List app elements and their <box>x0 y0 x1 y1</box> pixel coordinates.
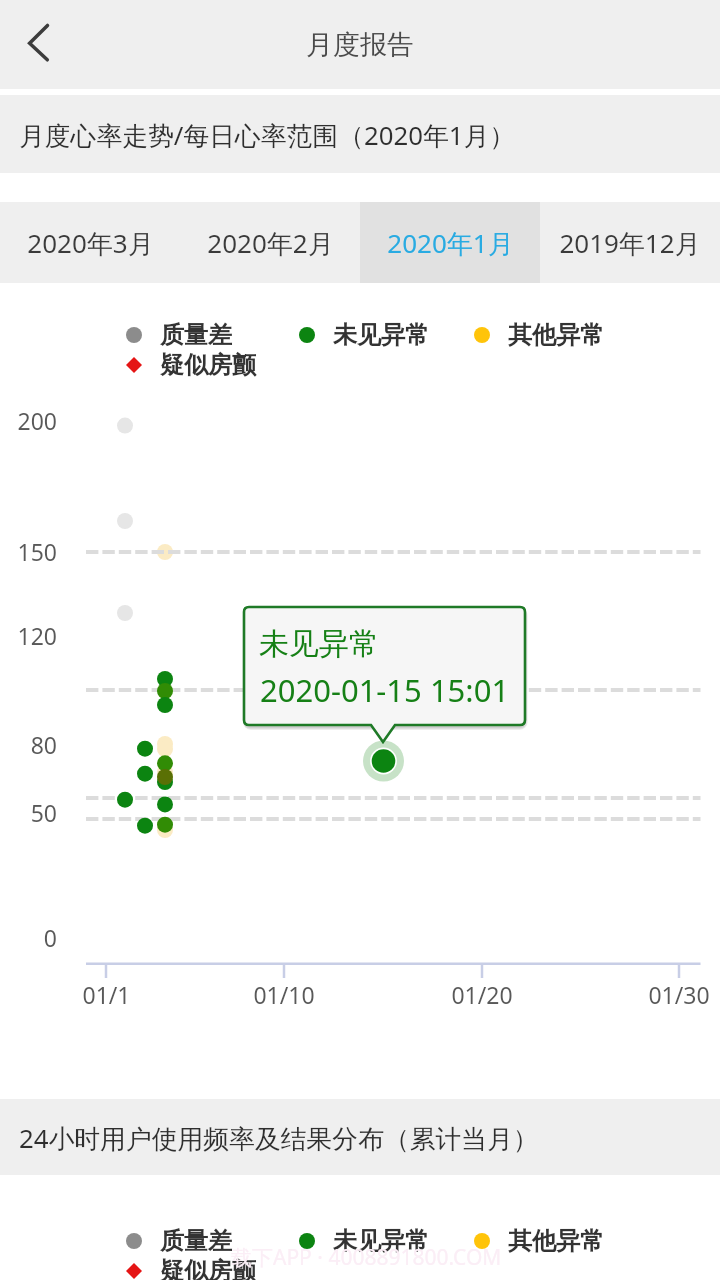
staticText: 200 <box>17 405 57 436</box>
staticText: 未见异常 <box>333 320 429 350</box>
button[interactable]: 2020年3月 <box>0 202 180 283</box>
button[interactable]: 2020年1月 <box>360 202 540 283</box>
staticText: 质量差 <box>160 320 232 350</box>
staticText: 月度报告 <box>306 28 414 62</box>
staticText: 150 <box>17 536 57 567</box>
staticText: 0 <box>43 922 57 953</box>
staticText: 疑似房颤 <box>160 1256 256 1280</box>
staticText: 其他异常 <box>508 320 604 350</box>
staticText: 2019年12月 <box>559 225 701 261</box>
staticText: 120 <box>17 620 57 651</box>
staticText: 质量差 <box>160 1226 232 1256</box>
staticText: 2020-01-15 15:01 <box>260 669 510 711</box>
staticText: 80 <box>30 729 57 760</box>
staticText: 2020年2月 <box>207 225 334 261</box>
staticText: 01/30 <box>648 979 710 1010</box>
button[interactable]: 未见异常 <box>244 607 525 725</box>
button[interactable]: 2019年12月 <box>540 202 720 283</box>
staticText: 月度心率走势/每日心率范围（2020年1月） <box>19 117 516 152</box>
staticText: 24小时用户使用频率及结果分布（累计当月） <box>19 1120 539 1155</box>
staticText: 2020年1月 <box>387 225 514 261</box>
staticText: 载下APP · 4008891800.COM <box>231 1243 502 1272</box>
staticText: 01/10 <box>253 979 315 1010</box>
staticText: 未见异常 <box>259 625 379 663</box>
button[interactable]: Back <box>0 0 78 89</box>
staticText: 01/1 <box>82 979 131 1010</box>
staticText: 2020年3月 <box>27 225 154 261</box>
staticText: 01/20 <box>451 979 513 1010</box>
button[interactable]: 2020年2月 <box>180 202 360 283</box>
staticText: 50 <box>30 797 57 828</box>
staticText: 未见异常 <box>333 1226 429 1256</box>
staticText: 疑似房颤 <box>160 350 256 380</box>
staticText: 其他异常 <box>508 1226 604 1256</box>
